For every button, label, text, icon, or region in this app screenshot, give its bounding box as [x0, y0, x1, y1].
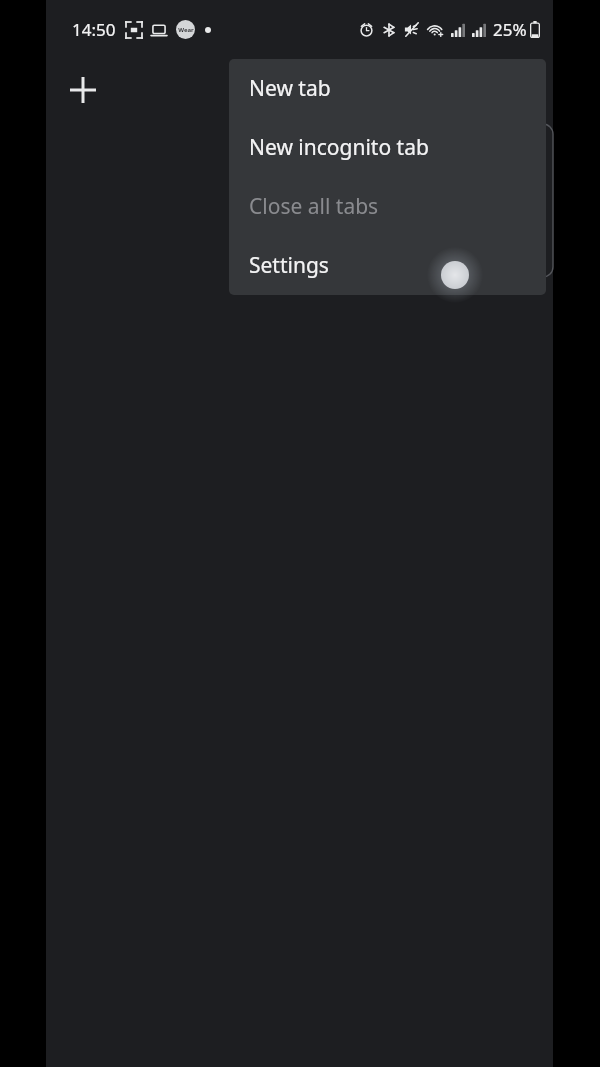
button[interactable]: New incognito tab: [229, 118, 546, 177]
button[interactable]: New tab: [57, 64, 109, 116]
button: Close all tabs: [229, 177, 546, 236]
staticText: New tab: [249, 74, 331, 103]
staticText: Wear: [178, 26, 194, 34]
staticText: 25%: [493, 18, 527, 41]
staticText: 14:50: [72, 18, 116, 41]
staticText: Settings: [249, 251, 329, 280]
staticText: Close all tabs: [249, 192, 379, 221]
button[interactable]: New tab: [229, 59, 546, 118]
staticText: New incognito tab: [249, 133, 429, 162]
button[interactable]: Settings: [229, 236, 546, 295]
